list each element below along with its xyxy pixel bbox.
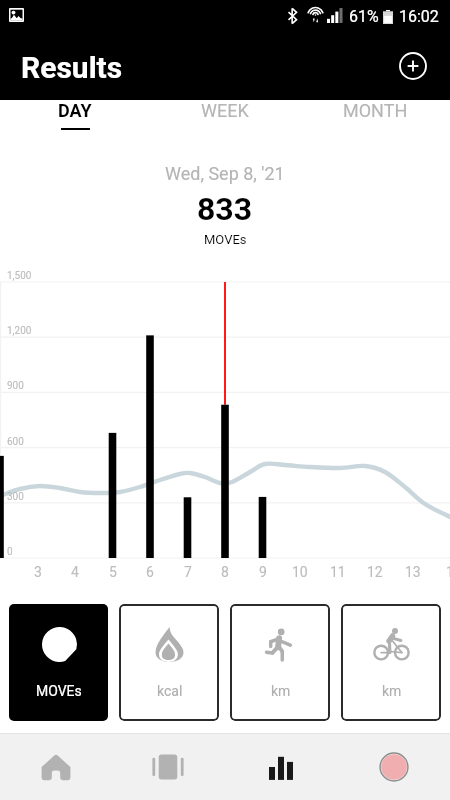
staticText: 12: [367, 564, 383, 580]
button[interactable]: km: [230, 604, 330, 721]
staticText: 13: [405, 564, 421, 580]
staticText: km: [382, 683, 402, 699]
button[interactable]: MONTH: [300, 100, 450, 140]
staticText: 16:02: [399, 7, 439, 26]
staticText: WEEK: [201, 100, 249, 121]
staticText: 1,200: [7, 325, 32, 337]
staticText: Results: [21, 50, 123, 85]
staticText: 7: [184, 564, 192, 580]
staticText: 4: [71, 564, 79, 580]
staticText: 900: [7, 380, 24, 392]
staticText: 0: [7, 546, 13, 558]
staticText: MOVEs: [36, 683, 82, 699]
staticText: 61%: [349, 7, 379, 26]
staticText: 600: [7, 436, 24, 448]
staticText: 8: [221, 564, 229, 580]
staticText: 10: [292, 564, 308, 580]
button[interactable]: Statistics: [224, 734, 337, 800]
button[interactable]: km: [341, 604, 441, 721]
staticText: 1: [446, 564, 450, 580]
button[interactable]: Profile: [337, 734, 450, 800]
staticText: 300: [7, 491, 24, 503]
button[interactable]: Cards: [112, 734, 224, 800]
staticText: 6: [146, 564, 154, 580]
button[interactable]: DAY: [0, 100, 150, 140]
staticText: 3: [34, 564, 42, 580]
staticText: kcal: [157, 683, 183, 699]
button[interactable]: MOVEs: [9, 604, 108, 721]
button[interactable]: kcal: [119, 604, 219, 721]
staticText: 1,500: [7, 270, 32, 282]
staticText: MOVEs: [204, 232, 247, 247]
button[interactable]: WEEK: [150, 100, 300, 140]
staticText: 9: [259, 564, 267, 580]
staticText: 833: [197, 190, 253, 228]
staticText: 5: [109, 564, 117, 580]
staticText: Wed, Sep 8, '21: [165, 163, 285, 184]
button[interactable]: Home: [0, 734, 112, 800]
button[interactable]: Add: [399, 52, 427, 80]
staticText: DAY: [58, 100, 92, 121]
staticText: km: [271, 683, 291, 699]
staticText: MONTH: [343, 100, 408, 121]
staticText: 11: [330, 564, 346, 580]
